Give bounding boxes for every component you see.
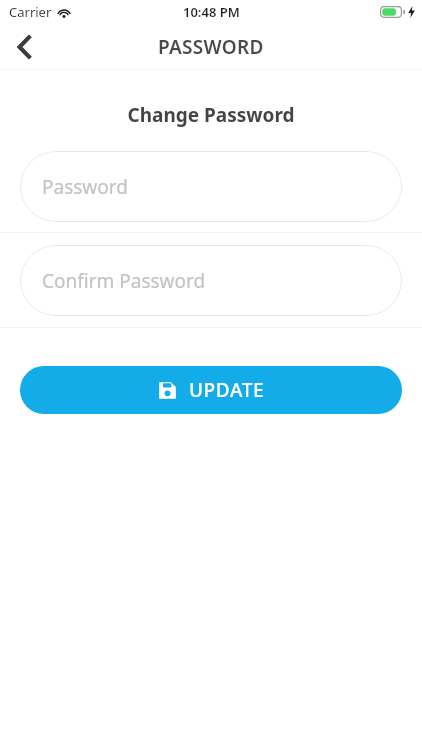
button[interactable]: Password: [20, 151, 402, 222]
button[interactable]: UPDATE: [20, 366, 402, 414]
button[interactable]: Confirm Password: [20, 245, 402, 316]
staticText: Change Password: [0, 102, 422, 128]
staticText: UPDATE: [189, 377, 265, 403]
staticText: 10:48 PM: [183, 3, 240, 21]
button[interactable]: Back: [0, 24, 48, 69]
staticText: PASSWORD: [158, 34, 264, 60]
staticText: Carrier: [9, 3, 52, 21]
staticText: Confirm Password: [42, 268, 206, 294]
staticText: Password: [42, 174, 128, 200]
